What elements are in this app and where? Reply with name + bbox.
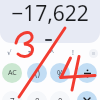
button[interactable]: 9 [50, 91, 70, 100]
staticText: ! [72, 48, 74, 58]
button[interactable]: 8 [27, 91, 47, 100]
button[interactable]: 7 [2, 91, 22, 100]
button[interactable]: mul [77, 91, 97, 100]
staticText: 8 [35, 96, 40, 100]
button[interactable]: sqrt [0, 44, 18, 62]
button[interactable]: AC [2, 63, 22, 83]
button[interactable]: −17,622 [0, 0, 100, 43]
staticText: −17,622 [0, 0, 100, 42]
button[interactable]: () [27, 63, 47, 83]
button[interactable]: pi [21, 44, 39, 62]
staticText: π [28, 48, 33, 58]
staticText: √ [7, 49, 12, 57]
staticText: () [35, 68, 40, 79]
staticText: % [57, 68, 64, 79]
button[interactable]: pow [43, 44, 61, 62]
button[interactable]: div [77, 63, 97, 83]
button[interactable]: % [50, 63, 70, 83]
button[interactable]: more [84, 44, 100, 62]
button[interactable]: fact [64, 44, 82, 62]
staticText: 9 [58, 96, 63, 100]
staticText: ^ [50, 48, 55, 58]
staticText: AC [8, 68, 17, 78]
staticText: 7 [10, 96, 15, 100]
